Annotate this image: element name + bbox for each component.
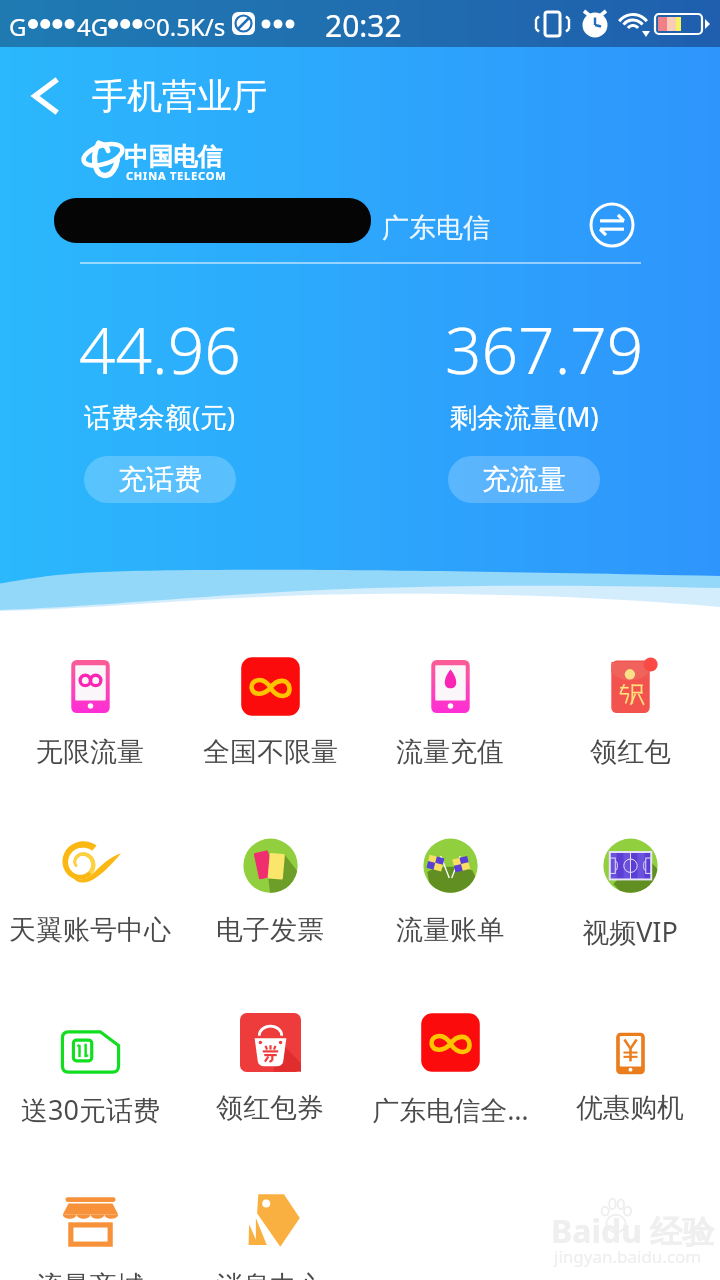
button[interactable]: 消息中心 (180, 1166, 360, 1280)
staticText: 手机营业厅 (92, 74, 267, 118)
button[interactable]: 流量账单 (360, 810, 540, 988)
staticText: 20:32 (325, 5, 402, 46)
staticText: Baidu 经验 (551, 1209, 715, 1253)
button[interactable]: 领红包券 (180, 988, 360, 1166)
staticText: 广东电信 (382, 211, 490, 245)
button[interactable]: 流量商城 (0, 1166, 180, 1280)
button[interactable]: 无限流量 (0, 632, 180, 810)
staticText: CHINA TELECOM (126, 168, 227, 183)
staticText: 4G (77, 10, 109, 43)
staticText: 流量充值 (396, 735, 504, 769)
staticText: 剩余流量(M) (450, 398, 599, 435)
staticText: 话费余额(元) (84, 398, 236, 435)
staticText: 无限流量 (36, 735, 144, 769)
button[interactable]: 送30元话费 (0, 988, 180, 1166)
staticText: 视频VIP (582, 913, 678, 950)
button[interactable]: 流量充值 (360, 632, 540, 810)
staticText: 天翼账号中心 (9, 913, 171, 947)
staticText: 44.96 (79, 306, 241, 393)
staticText: G (9, 10, 27, 43)
button[interactable]: 电子发票 (180, 810, 360, 988)
staticText: 送30元话费 (21, 1091, 160, 1128)
button[interactable]: 领红包 (540, 632, 720, 810)
button[interactable]: 全国不限量 (180, 632, 360, 810)
staticText: 领红包券 (216, 1091, 324, 1125)
staticText: 中国电信 (124, 141, 222, 172)
staticText: 电子发票 (216, 913, 324, 947)
staticText: 367.79 (445, 306, 644, 393)
staticText: 消息中心 (216, 1269, 324, 1280)
staticText: 0.5K/s (156, 10, 226, 43)
staticText: jingyan.baidu.com (554, 1245, 702, 1268)
staticText: 充话费 (118, 462, 202, 497)
button[interactable]: 优惠购机 (540, 988, 720, 1166)
staticText: 充流量 (482, 462, 566, 497)
staticText: 流量账单 (396, 913, 504, 947)
staticText: 优惠购机 (576, 1091, 684, 1125)
button[interactable]: 充话费 (84, 456, 236, 503)
staticText: 全国不限量 (203, 735, 338, 769)
staticText: 广东电信全… (372, 1091, 529, 1128)
button[interactable]: Back (16, 68, 72, 124)
staticText: 领红包 (590, 735, 671, 769)
button[interactable]: 视频VIP (540, 810, 720, 988)
button[interactable]: 充流量 (448, 456, 600, 503)
button[interactable]: 天翼账号中心 (0, 810, 180, 988)
staticText: 流量商城 (36, 1269, 144, 1280)
button[interactable]: 广东电信全… (360, 988, 540, 1166)
button[interactable]: Switch number (589, 202, 635, 248)
